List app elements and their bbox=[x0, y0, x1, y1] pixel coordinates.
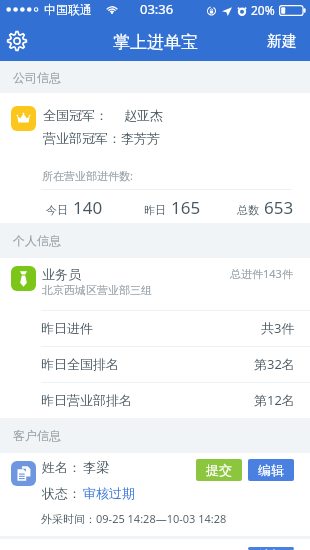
staticText: 共3件 bbox=[261, 319, 295, 337]
staticText: 昨日进件 bbox=[41, 320, 93, 336]
staticText: 昨日营业部排名 bbox=[41, 392, 132, 408]
staticText: 所在营业部进件数: bbox=[42, 168, 133, 183]
staticText: 状态： bbox=[42, 485, 81, 501]
staticText: 北京西城区营业部三组 bbox=[42, 283, 152, 297]
staticText: 姓名： bbox=[42, 459, 81, 475]
staticText: 公司信息 bbox=[13, 70, 61, 85]
staticText: 编辑 bbox=[258, 462, 284, 478]
staticText: 业务员 bbox=[42, 266, 81, 282]
staticText: 新建 bbox=[267, 32, 297, 51]
staticText: 个人信息 bbox=[13, 233, 61, 248]
button[interactable]: 昨日全国排名 bbox=[0, 346, 310, 382]
staticText: 140 bbox=[73, 196, 103, 219]
button[interactable]: 编辑 bbox=[248, 459, 294, 481]
staticText: 掌上进单宝 bbox=[113, 32, 198, 53]
button[interactable]: 昨日营业部排名 bbox=[0, 382, 310, 418]
button[interactable]: 昨日进件 bbox=[0, 310, 310, 346]
staticText: 外采时间：09-25 14:28—10-03 14:28 bbox=[41, 511, 227, 526]
staticText: 第12名 bbox=[254, 391, 295, 409]
staticText: 653 bbox=[264, 196, 294, 219]
staticText: 中国联通 bbox=[44, 2, 92, 17]
staticText: 李梁 bbox=[83, 459, 109, 475]
staticText: 20% bbox=[251, 2, 275, 18]
staticText: 审核过期 bbox=[83, 485, 135, 501]
button[interactable]: 编辑 bbox=[248, 547, 294, 550]
staticText: 03:36 bbox=[140, 0, 174, 18]
button[interactable]: 新建 bbox=[253, 20, 310, 61]
staticText: 客户信息 bbox=[13, 428, 61, 443]
staticText: 营业部冠军： bbox=[43, 130, 121, 146]
staticText: 总进件143件 bbox=[230, 266, 293, 281]
staticText: 总数 bbox=[237, 203, 259, 217]
staticText: 编辑 bbox=[258, 547, 284, 550]
staticText: 165 bbox=[171, 196, 201, 219]
button[interactable]: Settings bbox=[0, 20, 33, 61]
staticText: 今日 bbox=[46, 203, 68, 217]
staticText: 昨日全国排名 bbox=[41, 356, 119, 372]
staticText: 提交 bbox=[206, 462, 232, 478]
staticText: 全国冠军： bbox=[43, 107, 108, 123]
staticText: 李芳芳 bbox=[121, 130, 160, 146]
button[interactable]: 提交 bbox=[196, 459, 242, 481]
staticText: 赵亚杰 bbox=[124, 107, 163, 123]
staticText: 昨日 bbox=[144, 203, 166, 217]
button[interactable]: 姓名： bbox=[0, 453, 310, 536]
staticText: 第32名 bbox=[254, 355, 295, 373]
